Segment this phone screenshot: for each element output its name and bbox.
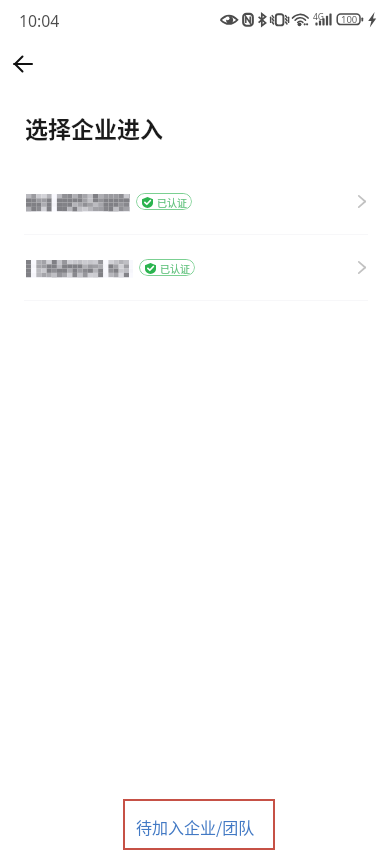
staticText: 待加入企业/团队 — [136, 815, 255, 838]
staticText: 已认证 — [160, 261, 190, 275]
staticText: 已认证 — [157, 195, 187, 209]
button[interactable]: Back — [7, 48, 39, 80]
button[interactable]: 待加入企业/团队 — [123, 799, 275, 850]
button[interactable]: 已认证 — [0, 234, 392, 300]
button[interactable]: 已认证 — [0, 168, 392, 234]
staticText: 选择企业进入 — [25, 111, 163, 144]
staticText: 10:04 — [19, 10, 60, 32]
staticText: 4G — [313, 11, 325, 23]
staticText: 100 — [341, 13, 358, 26]
